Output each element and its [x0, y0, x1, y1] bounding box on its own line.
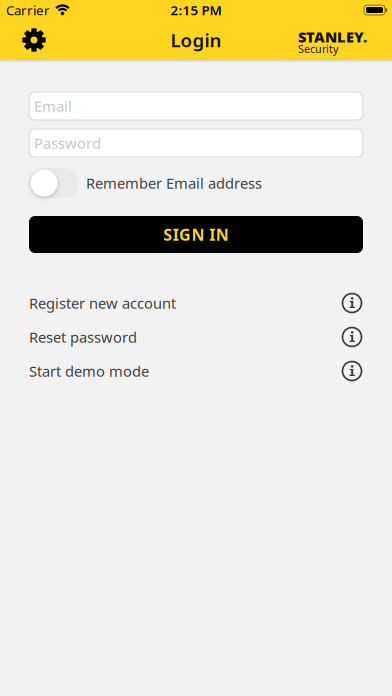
staticText: Reset password — [29, 327, 137, 347]
staticText: 2:15 PM — [170, 1, 221, 19]
staticText: SIGN IN — [163, 224, 229, 245]
staticText: Security — [298, 42, 338, 56]
button[interactable]: Remember Email address — [29, 168, 262, 198]
button[interactable]: Settings — [12, 20, 56, 60]
staticText: Remember Email address — [86, 173, 262, 193]
staticText: Password — [34, 133, 101, 153]
button[interactable]: Reset password — [29, 320, 363, 354]
button[interactable]: Start demo mode — [29, 354, 363, 388]
staticText: Email — [34, 96, 72, 116]
staticText: STANLEY. — [298, 27, 367, 47]
staticText: Register new account — [29, 293, 176, 313]
staticText: Login — [170, 28, 221, 52]
staticText: Start demo mode — [29, 361, 149, 381]
button[interactable]: Register new account — [29, 286, 363, 320]
staticText: Carrier — [6, 1, 50, 19]
button[interactable]: SIGN IN — [29, 216, 363, 253]
